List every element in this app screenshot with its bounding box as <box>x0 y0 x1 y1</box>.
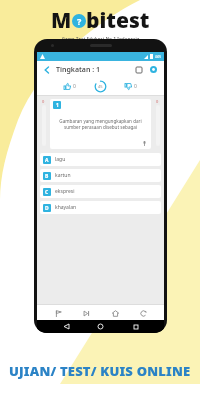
button[interactable]: Home <box>95 321 106 332</box>
button[interactable]: Next <box>79 306 93 320</box>
staticText: 0 <box>134 83 137 90</box>
staticText: 0 <box>156 99 159 104</box>
button[interactable]: C <box>40 185 161 198</box>
staticText: ekspresi <box>55 188 75 195</box>
button[interactable]: Refresh <box>136 306 150 320</box>
button[interactable]: Report <box>51 306 65 320</box>
button[interactable]: Home <box>108 306 122 320</box>
button[interactable]: Back <box>41 64 53 76</box>
staticText: 1 <box>56 102 59 109</box>
button[interactable]: Settings <box>147 63 160 76</box>
staticText: kartun <box>55 172 71 179</box>
button[interactable]: D <box>40 201 161 214</box>
staticText: D <box>45 205 49 212</box>
staticText: lagu <box>55 156 66 163</box>
button[interactable]: Timer <box>94 80 107 93</box>
other: Like <box>64 83 71 90</box>
staticText: 0 <box>42 99 45 104</box>
staticText: B <box>45 173 49 180</box>
button[interactable]: Dislike <box>121 81 141 92</box>
staticText: 45 <box>98 84 103 89</box>
staticText: Game Test Edukasi No 1 Indonesia <box>62 36 140 41</box>
staticText: Gambaran yang mengungkapkan dari sumber … <box>58 118 143 131</box>
button[interactable]: Back <box>61 321 72 332</box>
button[interactable]: Recents <box>130 321 141 332</box>
staticText: A <box>45 157 49 164</box>
staticText: M <box>51 6 72 35</box>
staticText: UJIAN/ TEST/ KUIS ONLINE <box>9 362 191 380</box>
button[interactable]: B <box>40 169 161 182</box>
staticText: ? <box>77 15 82 27</box>
staticText: 4:05 <box>155 55 161 59</box>
staticText: C <box>45 189 49 196</box>
staticText: khayalan <box>55 204 77 211</box>
button[interactable]: Play audio <box>140 139 148 147</box>
other: Dislike <box>125 83 132 90</box>
button[interactable]: Bookmark <box>132 63 145 76</box>
staticText: 0 <box>73 83 76 90</box>
button[interactable]: A <box>40 153 161 166</box>
button[interactable]: Like <box>60 81 80 92</box>
staticText: bitest <box>86 6 150 35</box>
staticText: Tingkatan : 1 <box>56 65 101 75</box>
